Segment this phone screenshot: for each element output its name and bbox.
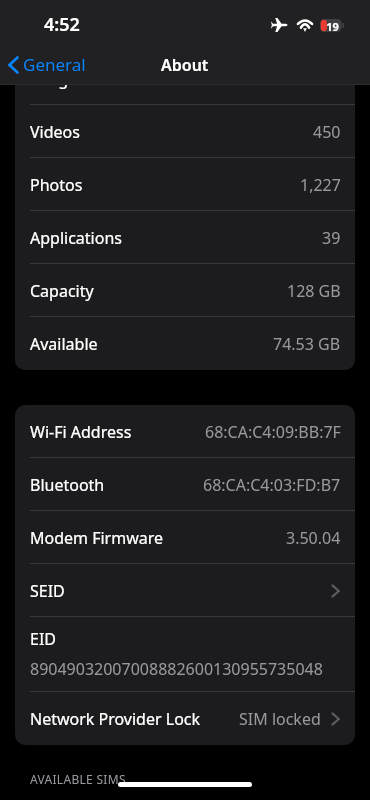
staticText: 39 — [322, 227, 341, 249]
button[interactable]: General — [8, 53, 86, 76]
staticText: Applications — [30, 227, 122, 249]
staticText: 3.50.04 — [286, 527, 341, 549]
staticText: Available — [30, 333, 98, 355]
button[interactable]: Bluetooth — [15, 458, 355, 511]
staticText: Songs — [30, 68, 76, 90]
staticText: 68:CA:C4:09:BB:7F — [205, 421, 341, 443]
staticText: 128 GB — [287, 280, 341, 302]
staticText: 0 — [331, 68, 341, 90]
button[interactable]: Wi-Fi Address — [15, 405, 355, 458]
staticText: SEID — [30, 580, 65, 602]
button[interactable]: Network Provider Lock — [15, 692, 355, 745]
staticText: 450 — [313, 121, 341, 143]
staticText: 89049032007008882600130955735048 — [30, 658, 323, 680]
button[interactable]: Capacity — [15, 264, 355, 317]
staticText: 74.53 GB — [273, 333, 341, 355]
staticText: Videos — [30, 121, 80, 143]
button[interactable]: Applications — [15, 211, 355, 264]
staticText: 1,227 — [300, 174, 341, 196]
staticText: General — [23, 53, 86, 76]
staticText: 68:CA:C4:03:FD:B7 — [203, 474, 341, 496]
button[interactable]: EID — [15, 617, 355, 692]
staticText: EID — [30, 628, 57, 650]
staticText: AVAILABLE SIMS — [30, 771, 126, 787]
button[interactable]: Available — [15, 317, 355, 370]
button[interactable]: SEID — [15, 564, 355, 617]
button[interactable]: Songs — [15, 52, 355, 105]
staticText: Bluetooth — [30, 474, 105, 496]
button[interactable]: Videos — [15, 105, 355, 158]
button[interactable]: Photos — [15, 158, 355, 211]
staticText: Capacity — [30, 280, 94, 302]
button[interactable]: Modem Firmware — [15, 511, 355, 564]
staticText: 19 — [326, 19, 339, 32]
staticText: Network Provider Lock — [30, 708, 201, 730]
staticText: Photos — [30, 174, 83, 196]
staticText: Wi-Fi Address — [30, 421, 132, 443]
staticText: About — [161, 54, 209, 76]
staticText: 4:52 — [44, 12, 80, 37]
staticText: Modem Firmware — [30, 527, 164, 549]
staticText: SIM locked — [239, 708, 321, 730]
